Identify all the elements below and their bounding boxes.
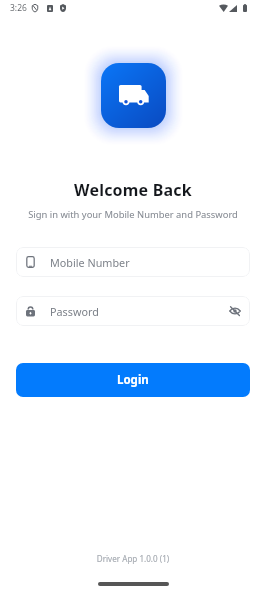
staticText: Welcome Back [0,179,266,201]
staticText: 3:26 [10,2,27,14]
staticText: Password [50,304,228,319]
staticText: Sign in with your Mobile Number and Pass… [0,208,266,221]
other: Driver app logo [101,63,166,128]
button[interactable]: Show password [228,304,242,318]
button[interactable]: Login [16,363,250,397]
staticText: Driver App 1.0.0 (1) [0,553,266,564]
staticText: Login [117,372,149,388]
staticText: Mobile Number [50,255,242,270]
button[interactable]: Password [16,296,250,326]
button[interactable]: Mobile Number [16,247,250,277]
